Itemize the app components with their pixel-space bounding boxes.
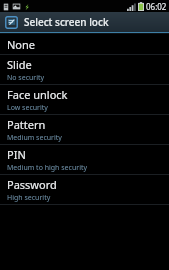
button[interactable]: PIN (0, 145, 169, 174)
staticText: Medium to high security (7, 163, 88, 173)
staticText: Password (7, 177, 57, 192)
staticText: Pattern (7, 117, 46, 132)
staticText: Medium security (7, 133, 62, 143)
staticText: PIN (7, 147, 26, 162)
staticText: No security (7, 73, 45, 83)
staticText: 06:02 (146, 1, 167, 12)
button[interactable]: None (0, 34, 169, 54)
staticText: Face unlock (7, 87, 68, 102)
staticText: High security (7, 193, 51, 203)
staticText: None (7, 37, 36, 52)
staticText: Select screen lock (24, 15, 109, 29)
staticText: Slide (7, 57, 32, 72)
button[interactable]: Password (0, 175, 169, 204)
button[interactable]: Slide (0, 55, 169, 84)
staticText: Low security (7, 103, 48, 113)
button[interactable]: Select screen lock (0, 12, 169, 32)
button[interactable]: Face unlock (0, 85, 169, 114)
button[interactable]: Pattern (0, 115, 169, 144)
